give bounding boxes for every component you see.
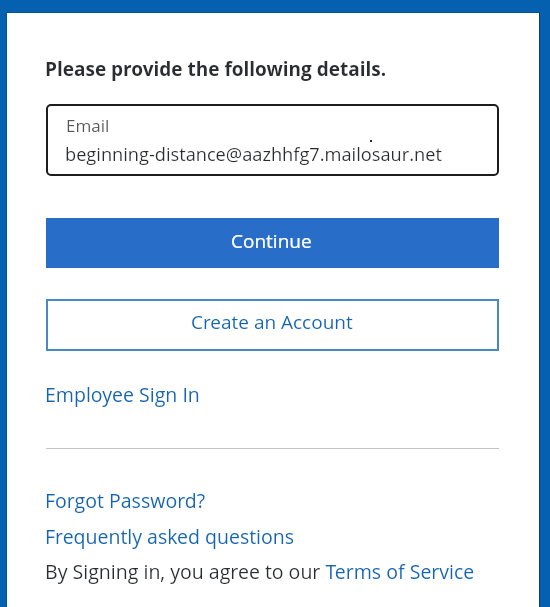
button[interactable] — [46, 104, 499, 176]
button[interactable]: Forgot Password? — [45, 487, 206, 514]
staticText: Frequently asked questions — [45, 523, 295, 550]
staticText: Create an Account — [191, 309, 353, 335]
staticText: Forgot Password? — [45, 487, 206, 514]
staticText: Employee Sign In — [45, 381, 200, 408]
staticText: Continue — [231, 228, 312, 254]
staticText: Please provide the following details. — [45, 56, 387, 82]
staticText: Email — [66, 114, 110, 137]
button[interactable] — [46, 218, 499, 268]
staticText: By Signing in, you agree to our Terms of… — [45, 558, 475, 585]
staticText: beginning-distance@aazhhfg7.mailosaur.ne… — [65, 142, 442, 167]
button[interactable] — [46, 299, 499, 351]
button[interactable]: Frequently asked questions — [45, 523, 295, 550]
button[interactable]: Employee Sign In — [45, 381, 200, 408]
